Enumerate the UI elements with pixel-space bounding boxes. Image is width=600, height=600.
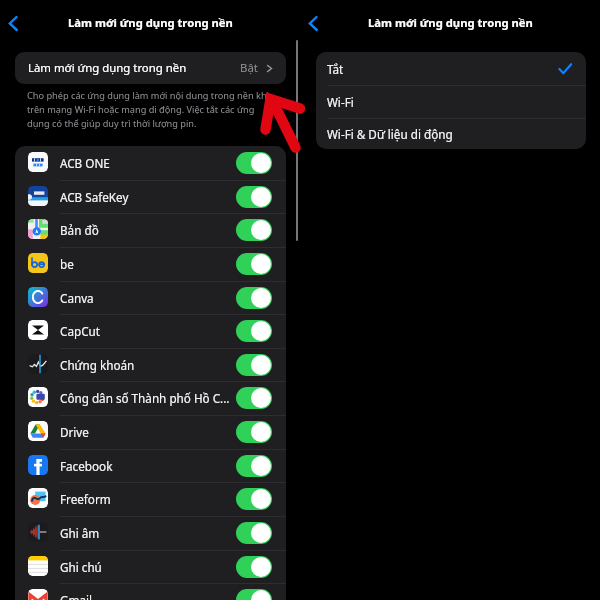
staticText: be xyxy=(60,256,74,272)
button[interactable]: Back xyxy=(2,10,28,36)
staticText: CapCut xyxy=(60,323,100,339)
button[interactable]: Toggle xyxy=(236,219,272,241)
staticText: Chứng khoán xyxy=(60,357,135,373)
button[interactable]: Wi-Fi & Dữ liệu di động xyxy=(316,118,586,149)
button[interactable]: Toggle xyxy=(236,556,272,578)
button[interactable]: Toggle xyxy=(236,488,272,510)
button[interactable]: Công dân số Thành phố Hồ C... xyxy=(15,381,286,415)
button[interactable]: CapCut xyxy=(15,314,286,348)
staticText: Canva xyxy=(60,290,94,306)
button[interactable]: Drive xyxy=(15,415,286,449)
staticText: Công dân số Thành phố Hồ C... xyxy=(60,390,230,406)
staticText: Gmail xyxy=(60,592,93,600)
staticText: Wi-Fi & Dữ liệu di động xyxy=(327,126,453,142)
button[interactable]: ACB SafeKey xyxy=(15,180,286,214)
button[interactable]: be xyxy=(15,247,286,281)
staticText: Freeform xyxy=(60,491,111,507)
button[interactable]: Gmail xyxy=(15,583,286,600)
staticText: Ghi âm xyxy=(60,525,100,541)
staticText: Làm mới ứng dụng trong nền xyxy=(368,15,533,30)
button[interactable]: Tắt xyxy=(316,52,586,85)
button[interactable]: Toggle xyxy=(236,589,272,600)
button[interactable]: Toggle xyxy=(236,320,272,342)
button[interactable]: Facebook xyxy=(15,449,286,483)
staticText: Bản đồ xyxy=(60,222,99,238)
staticText: Bật xyxy=(240,60,258,76)
button[interactable]: Freeform xyxy=(15,482,286,516)
staticText: Cho phép các ứng dụng làm mới nội dung t… xyxy=(27,89,276,129)
staticText: Làm mới ứng dụng trong nền xyxy=(68,15,233,30)
button[interactable]: Canva xyxy=(15,281,286,315)
button[interactable]: Ghi chú xyxy=(15,550,286,584)
button[interactable]: Toggle xyxy=(236,152,272,174)
staticText: ACB SafeKey xyxy=(60,189,129,205)
staticText: Drive xyxy=(60,424,89,440)
staticText: Wi-Fi xyxy=(327,94,354,110)
button[interactable]: Wi-Fi xyxy=(316,85,586,118)
button[interactable]: Back xyxy=(302,10,328,36)
staticText: ACB ONE xyxy=(60,155,110,171)
button[interactable]: Toggle xyxy=(236,455,272,477)
button[interactable]: Chứng khoán xyxy=(15,348,286,382)
staticText: Ghi chú xyxy=(60,559,102,575)
button[interactable]: Toggle xyxy=(236,253,272,275)
button[interactable]: Làm mới ứng dụng trong nền xyxy=(15,52,286,84)
staticText: Facebook xyxy=(60,458,113,474)
button[interactable]: Toggle xyxy=(236,354,272,376)
button[interactable]: ACB ONE xyxy=(15,146,286,180)
button[interactable]: Toggle xyxy=(236,387,272,409)
button[interactable]: Toggle xyxy=(236,421,272,443)
button[interactable]: Toggle xyxy=(236,522,272,544)
button[interactable]: Bản đồ xyxy=(15,213,286,247)
staticText: Tắt xyxy=(327,61,344,77)
button[interactable]: Ghi âm xyxy=(15,516,286,550)
button[interactable]: Toggle xyxy=(236,186,272,208)
button[interactable]: Toggle xyxy=(236,287,272,309)
staticText: Làm mới ứng dụng trong nền xyxy=(28,60,187,76)
